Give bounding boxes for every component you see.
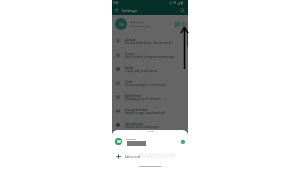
button[interactable]: QR code [174, 21, 180, 27]
button[interactable]: DB [112, 15, 188, 34]
staticText: Create, edit, profile photo [125, 69, 158, 73]
staticText: Storage and data [125, 108, 148, 112]
button[interactable]: Chats [112, 76, 188, 90]
staticText: English (device's language) [125, 125, 159, 129]
staticText: Privacy [125, 52, 135, 56]
button[interactable]: DB [112, 136, 188, 147]
button[interactable]: Search [179, 7, 186, 14]
staticText: DB [117, 140, 121, 144]
staticText: Account [125, 38, 136, 42]
staticText: DB [119, 22, 124, 27]
staticText: 4:36 [113, 1, 119, 5]
staticText: Settings [122, 8, 137, 13]
button[interactable]: Avatar [112, 62, 188, 76]
staticText: App language [125, 122, 144, 126]
staticText: www.wabetainfo.com [130, 25, 150, 28]
staticText: Avatar [125, 66, 134, 70]
button[interactable]: Switch account [180, 21, 186, 27]
staticText: Add account [125, 155, 141, 159]
staticText: Network usage, auto-download [125, 111, 165, 115]
staticText: Security notifications, change number [125, 41, 173, 45]
staticText: Notifications [125, 94, 142, 98]
staticText: Chats [125, 80, 133, 84]
button[interactable]: Account [112, 34, 188, 48]
button[interactable]: Storage and data [112, 104, 188, 118]
staticText: Block contacts, disappearing messages [125, 55, 175, 59]
button[interactable]: Add account [112, 151, 188, 162]
button[interactable]: Notifications [112, 90, 188, 104]
button[interactable]: Back [114, 7, 120, 13]
button[interactable]: App language [112, 118, 188, 132]
button[interactable]: Privacy [112, 48, 188, 62]
staticText: Message, group & call tones [125, 97, 161, 101]
staticText: WABetaInfo [126, 138, 137, 140]
staticText: WABetaInfo [130, 20, 144, 23]
staticText: WABetaInfo [138, 151, 175, 159]
staticText: Theme, wallpapers, chat history [125, 83, 166, 87]
